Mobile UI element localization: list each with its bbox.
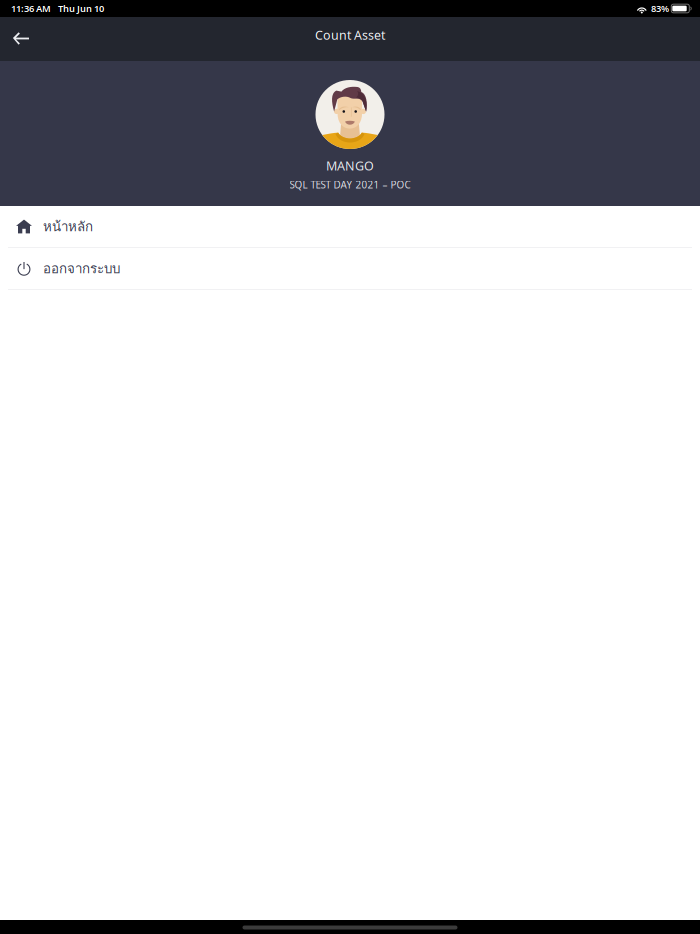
staticText: 83% <box>651 2 669 15</box>
staticText: Count Asset <box>315 27 385 43</box>
staticText: SQL TEST DAY 2021 – POC <box>289 178 410 191</box>
staticText: 11:36 AM <box>11 2 51 15</box>
staticText: MANGO <box>326 157 374 174</box>
staticText: ออกจากระบบ <box>43 258 120 279</box>
button[interactable]: หน้าหลัก <box>0 206 700 247</box>
button[interactable]: ออกจากระบบ <box>0 248 700 289</box>
staticText: Thu Jun 10 <box>58 2 104 15</box>
staticText: หน้าหลัก <box>43 216 93 237</box>
button[interactable]: Back <box>0 17 42 61</box>
